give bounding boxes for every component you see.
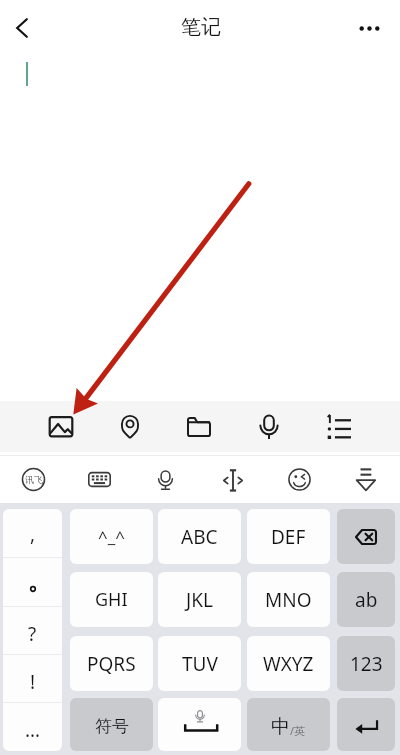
button[interactable]: Back bbox=[0, 0, 44, 56]
button[interactable]: 中 bbox=[247, 698, 330, 751]
button[interactable]: MNO bbox=[247, 572, 330, 627]
staticText: … bbox=[25, 717, 41, 743]
button[interactable]: Input method bbox=[0, 456, 66, 503]
button[interactable]: ? bbox=[3, 607, 62, 655]
staticText: ABC bbox=[181, 524, 218, 550]
button[interactable]: , bbox=[3, 509, 62, 558]
button[interactable]: Insert location bbox=[95, 401, 164, 452]
button[interactable]: JKL bbox=[158, 572, 241, 627]
staticText: WXYZ bbox=[263, 651, 314, 677]
staticText: MNO bbox=[265, 587, 312, 613]
button[interactable]: ^_^ bbox=[70, 509, 153, 564]
button[interactable]: … bbox=[3, 703, 62, 751]
staticText: 中 bbox=[271, 715, 290, 739]
staticText: JKL bbox=[186, 587, 213, 613]
staticText: ab bbox=[355, 587, 378, 613]
staticText: DEF bbox=[271, 524, 306, 550]
button[interactable]: TUV bbox=[158, 636, 241, 691]
button[interactable]: 123 bbox=[337, 636, 395, 691]
button[interactable]: Numbered list bbox=[304, 401, 374, 452]
staticText: TUV bbox=[182, 651, 218, 677]
button[interactable]: GHI bbox=[70, 572, 153, 627]
button[interactable]: Voice input bbox=[234, 401, 304, 452]
staticText: 符号 bbox=[95, 716, 129, 737]
button[interactable]: ab bbox=[337, 572, 395, 627]
button[interactable]: 符号 bbox=[70, 698, 153, 751]
staticText: 笔记 bbox=[181, 15, 221, 40]
button[interactable]: Hide keyboard bbox=[333, 456, 400, 503]
button[interactable] bbox=[3, 558, 62, 607]
button[interactable]: ! bbox=[3, 655, 62, 703]
button[interactable]: Enter bbox=[337, 698, 395, 751]
staticText: ? bbox=[28, 621, 37, 647]
button[interactable]: Emoji bbox=[266, 456, 333, 503]
button[interactable]: DEF bbox=[247, 509, 330, 564]
button[interactable]: Space bbox=[158, 698, 241, 751]
button[interactable]: Keyboard layout bbox=[66, 456, 132, 503]
staticText: 讯飞 bbox=[25, 474, 43, 485]
staticText: ^_^ bbox=[98, 525, 125, 548]
staticText: ! bbox=[30, 669, 36, 695]
button[interactable]: Insert image bbox=[26, 401, 95, 452]
staticText: , bbox=[30, 521, 36, 547]
button[interactable]: Backspace bbox=[337, 509, 395, 564]
button[interactable]: More options bbox=[342, 0, 394, 56]
button[interactable]: WXYZ bbox=[247, 636, 330, 691]
staticText: 123 bbox=[350, 651, 383, 677]
button[interactable]: Attach file bbox=[164, 401, 234, 452]
button[interactable]: Voice input bbox=[132, 456, 199, 503]
button[interactable]: Move cursor bbox=[199, 456, 266, 503]
button[interactable]: PQRS bbox=[70, 636, 153, 691]
staticText: PQRS bbox=[87, 651, 136, 677]
staticText: /英 bbox=[290, 723, 306, 738]
staticText: GHI bbox=[95, 587, 128, 612]
button[interactable]: ABC bbox=[158, 509, 241, 564]
